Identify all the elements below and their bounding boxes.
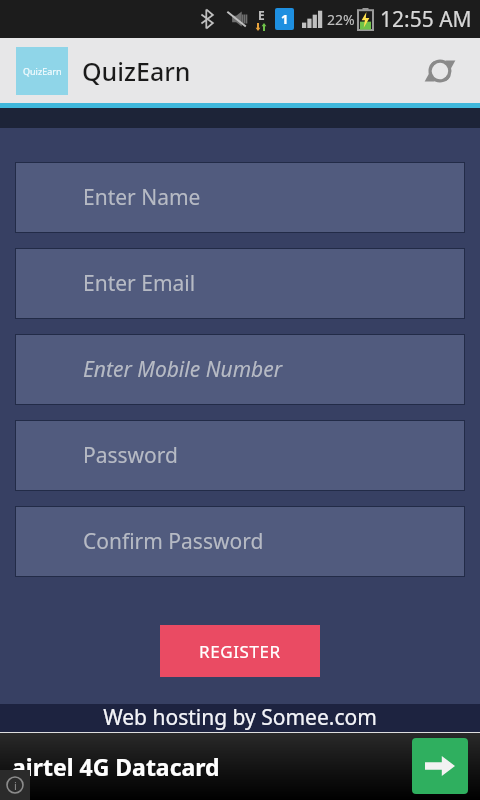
staticText: airtel 4G Datacard (12, 751, 220, 782)
button[interactable]: Open ad (412, 738, 468, 794)
staticText: 1 (281, 10, 289, 28)
staticText: REGISTER (199, 640, 281, 663)
button[interactable]: Refresh (416, 47, 464, 95)
button[interactable]: Enter Email (15, 248, 465, 319)
button[interactable]: Confirm Password (15, 506, 465, 577)
button[interactable]: Password (15, 420, 465, 491)
button[interactable]: Enter Mobile Number (15, 334, 465, 405)
staticText: 22% (327, 10, 355, 29)
staticText: QuizEarn (23, 65, 62, 77)
staticText: Confirm Password (83, 527, 264, 556)
staticText: Enter Mobile Number (83, 355, 283, 384)
staticText: Enter Email (83, 269, 196, 298)
staticText: QuizEarn (82, 54, 191, 88)
button[interactable]: airtel 4G Datacard (0, 732, 480, 800)
staticText: i (14, 778, 17, 793)
staticText: Web hosting by Somee.com (103, 703, 377, 731)
staticText: 12:55 AM (380, 5, 472, 34)
staticText: Enter Name (83, 183, 201, 212)
staticText: E (258, 7, 265, 23)
button[interactable]: Enter Name (15, 162, 465, 233)
staticText: Password (83, 441, 178, 470)
button[interactable]: REGISTER (160, 625, 320, 677)
